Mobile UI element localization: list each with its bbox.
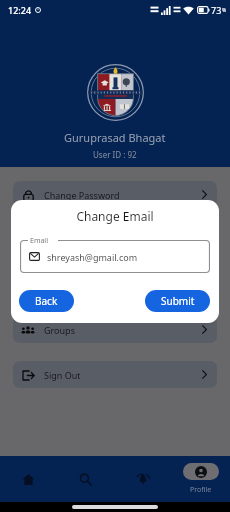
button[interactable]: Change Password: [13, 181, 217, 208]
staticText: Submit: [161, 294, 195, 308]
staticText: %: [222, 7, 227, 14]
staticText: 12:24: [8, 4, 32, 16]
button[interactable]: Search: [57, 456, 114, 502]
staticText: Change Email: [44, 234, 102, 246]
staticText: Profile: [190, 485, 212, 495]
button[interactable]: Change Mobile: [13, 271, 217, 298]
staticText: User ID : 92: [93, 149, 137, 160]
button[interactable]: Sign Out: [13, 361, 217, 388]
staticText: Back: [35, 294, 58, 308]
button[interactable]: Submit: [145, 290, 210, 312]
button[interactable]: Groups: [13, 316, 217, 343]
button[interactable]: Profile: [172, 456, 230, 502]
staticText: Sign Out: [44, 369, 81, 381]
button[interactable]: Back: [19, 290, 74, 312]
button[interactable]: Home: [0, 456, 57, 502]
staticText: Groups: [44, 324, 75, 336]
staticText: Email: [30, 236, 48, 246]
staticText: Change Mobile: [44, 279, 108, 291]
staticText: Change Password: [44, 189, 120, 201]
staticText: 73: [211, 4, 222, 16]
staticText: shreyash@gmail.com: [47, 251, 138, 263]
staticText: Change Email: [11, 208, 219, 224]
staticText: Guruprasad Bhagat: [64, 130, 166, 145]
button[interactable]: Change Email: [13, 226, 217, 253]
button[interactable]: Notifications: [114, 456, 172, 502]
